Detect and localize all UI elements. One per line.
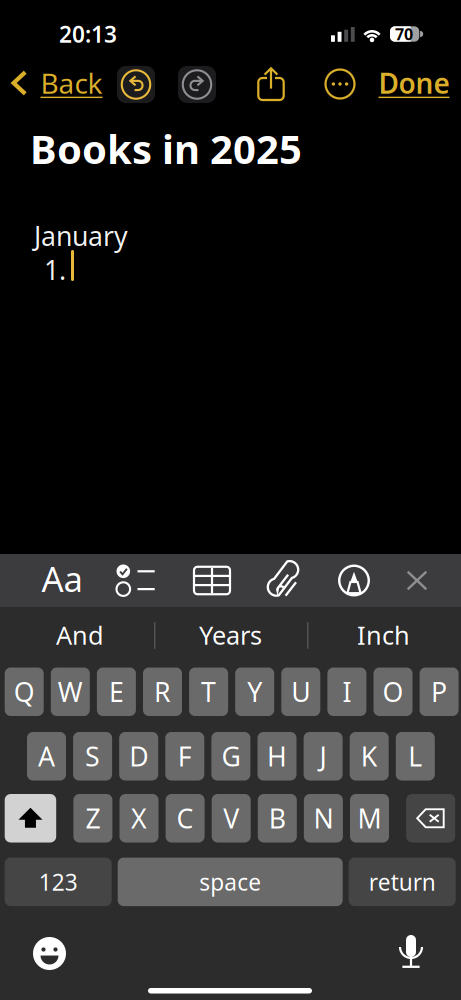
staticText: 1.: [44, 252, 66, 287]
button[interactable]: K: [350, 732, 389, 780]
staticText: return: [369, 867, 436, 897]
button[interactable]: B: [258, 794, 297, 842]
button[interactable]: return: [349, 858, 456, 906]
button[interactable]: C: [166, 794, 205, 842]
button[interactable]: Attach: [257, 554, 313, 607]
button[interactable]: And: [3, 609, 157, 661]
button[interactable]: J: [304, 732, 343, 780]
button[interactable]: D: [119, 732, 158, 780]
staticText: 70: [395, 23, 413, 45]
button[interactable]: R: [143, 667, 182, 716]
button[interactable]: Emoji: [21, 925, 77, 981]
staticText: N: [313, 800, 333, 836]
staticText: And: [56, 618, 104, 652]
staticText: Z: [85, 800, 100, 836]
button[interactable]: Shift: [5, 794, 56, 842]
staticText: Back: [40, 64, 102, 102]
button[interactable]: Undo: [117, 66, 155, 103]
staticText: L: [408, 738, 422, 774]
button[interactable]: U: [281, 667, 320, 716]
staticText: J: [320, 738, 327, 774]
button[interactable]: O: [373, 667, 412, 716]
button[interactable]: Delete: [406, 794, 455, 842]
staticText: G: [221, 738, 240, 774]
staticText: space: [199, 867, 261, 897]
button[interactable]: More: [318, 62, 362, 106]
button[interactable]: Close keyboard: [389, 554, 445, 607]
button[interactable]: Done: [370, 60, 458, 106]
button[interactable]: V: [212, 794, 251, 842]
staticText: Q: [14, 674, 35, 709]
staticText: V: [223, 800, 239, 836]
staticText: S: [85, 738, 100, 774]
staticText: P: [431, 674, 447, 709]
staticText: U: [291, 674, 310, 709]
staticText: W: [58, 674, 83, 709]
button[interactable]: space: [118, 858, 343, 906]
button[interactable]: Markup: [326, 554, 382, 607]
staticText: 123: [39, 867, 78, 897]
staticText: H: [267, 738, 287, 774]
button[interactable]: Checklist: [108, 554, 164, 607]
button[interactable]: L: [396, 732, 435, 780]
button[interactable]: Q: [5, 667, 44, 716]
staticText: T: [201, 674, 216, 709]
staticText: Years: [199, 618, 262, 652]
staticText: O: [382, 674, 403, 709]
button[interactable]: Share: [249, 62, 293, 106]
staticText: Aa: [41, 555, 82, 601]
button[interactable]: Y: [235, 667, 274, 716]
staticText: Books in 2025: [30, 122, 302, 175]
button[interactable]: P: [420, 667, 459, 716]
staticText: M: [357, 800, 381, 836]
button[interactable]: Table: [184, 554, 240, 607]
button[interactable]: S: [73, 732, 112, 780]
staticText: I: [342, 674, 351, 709]
staticText: K: [361, 738, 378, 774]
button[interactable]: M: [350, 794, 389, 842]
staticText: 20:13: [59, 19, 117, 49]
button[interactable]: E: [97, 667, 136, 716]
button[interactable]: F: [165, 732, 204, 780]
staticText: A: [38, 738, 55, 774]
button[interactable]: Aa: [34, 552, 90, 605]
button[interactable]: Z: [73, 794, 112, 842]
staticText: C: [177, 800, 194, 836]
staticText: January: [34, 218, 128, 253]
button[interactable]: T: [189, 667, 228, 716]
button[interactable]: W: [51, 667, 90, 716]
staticText: R: [154, 674, 171, 709]
staticText: Inch: [357, 618, 410, 652]
button[interactable]: N: [304, 794, 343, 842]
button[interactable]: X: [119, 794, 158, 842]
button[interactable]: Redo: [178, 66, 216, 103]
staticText: D: [129, 738, 148, 774]
button[interactable]: Dictation: [383, 923, 439, 979]
button[interactable]: Inch: [307, 609, 460, 661]
button[interactable]: H: [257, 732, 296, 780]
button[interactable]: Years: [154, 609, 307, 661]
staticText: E: [109, 674, 124, 709]
button[interactable]: A: [27, 732, 66, 780]
staticText: X: [131, 800, 147, 836]
staticText: F: [178, 738, 192, 774]
staticText: B: [269, 800, 286, 836]
button[interactable]: I: [327, 667, 366, 716]
staticText: Y: [247, 674, 262, 709]
button[interactable]: Back: [11, 60, 111, 106]
staticText: Done: [378, 64, 449, 102]
button[interactable]: G: [211, 732, 250, 780]
button[interactable]: 123: [5, 858, 112, 906]
